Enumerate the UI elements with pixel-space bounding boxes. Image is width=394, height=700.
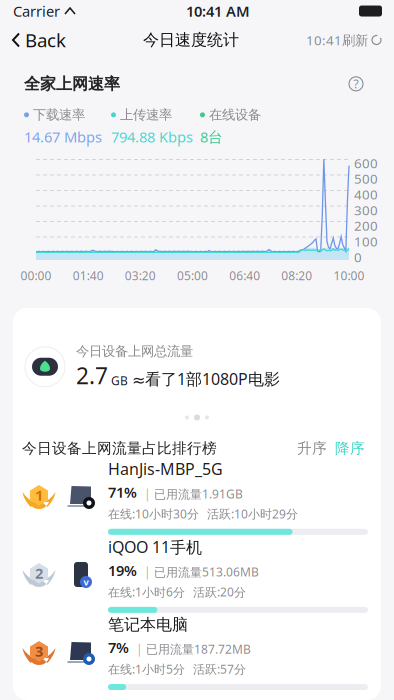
staticText: 06:40 [229, 267, 260, 283]
staticText: GB [111, 372, 128, 388]
staticText: 8台 [200, 127, 223, 146]
button[interactable]: 1 [13, 457, 381, 535]
staticText: 今日设备上网流量占比排行榜 [22, 439, 217, 457]
staticText: 升序 [297, 439, 327, 457]
staticText: 上传速率 [120, 107, 172, 123]
staticText: 14.67 Mbps [24, 127, 102, 146]
staticText: HanJis-MBP_5G [108, 458, 223, 479]
staticText: ? [353, 76, 358, 92]
button[interactable]: 降序 [327, 439, 365, 457]
staticText: 今日设备上网总流量 [76, 343, 193, 359]
staticText: 2 [35, 563, 43, 583]
staticText: 10:41刷新 [306, 31, 368, 49]
staticText: 今日速度统计 [143, 30, 239, 50]
staticText: | [144, 564, 151, 580]
staticText: 在线:1小时5分 活跃:57分 [108, 661, 246, 677]
staticText: 7% [108, 638, 129, 657]
staticText: 300 [354, 201, 378, 219]
staticText: 19% [108, 560, 137, 580]
button[interactable]: Back [0, 22, 76, 58]
staticText: 00:00 [20, 267, 51, 283]
staticText: 在线设备 [209, 107, 261, 123]
staticText: 794.88 Kbps [111, 127, 193, 146]
staticText: 已用流量187.72MB [146, 641, 251, 657]
staticText: 笔记本电脑 [108, 615, 188, 635]
staticText: 已用流量1.91GB [154, 486, 243, 502]
staticText: 3 [35, 641, 43, 661]
staticText: 01:40 [73, 267, 104, 283]
button[interactable]: 帮助 [349, 77, 363, 91]
button[interactable]: 10:41刷新 [306, 22, 394, 58]
staticText: | [136, 641, 143, 657]
staticText: 0 [354, 248, 362, 266]
staticText: 已用流量513.06MB [154, 564, 259, 580]
staticText: 1 [35, 485, 43, 505]
staticText: 03:20 [125, 267, 156, 283]
staticText: | [144, 486, 151, 502]
staticText: 600 [354, 154, 378, 172]
staticText: v [83, 576, 88, 588]
staticText: 71% [108, 482, 137, 502]
staticText: 全家上网速率 [24, 74, 120, 94]
button[interactable]: 升序 [297, 439, 327, 457]
staticText: 2.7 [76, 360, 108, 390]
staticText: 100 [354, 232, 378, 250]
staticText: iQOO 11手机 [108, 536, 202, 557]
staticText: 在线:10小时30分 活跃:10小时29分 [108, 506, 298, 522]
staticText: ≈看了1部1080P电影 [132, 368, 280, 389]
button[interactable]: 3 [13, 613, 381, 691]
staticText: 500 [354, 170, 378, 187]
staticText: 08:20 [281, 267, 312, 283]
staticText: 400 [354, 185, 378, 203]
staticText: 10:41 AM [186, 1, 250, 21]
staticText: 05:00 [177, 267, 208, 283]
staticText: 10:00 [333, 267, 364, 283]
staticText: 200 [354, 217, 378, 234]
staticText: 在线:1小时6分 活跃:20分 [108, 584, 246, 600]
staticText: Back [25, 28, 66, 52]
staticText: 降序 [335, 439, 365, 457]
button[interactable]: 2 [13, 535, 381, 613]
staticText: 下载速率 [33, 107, 85, 123]
staticText: Carrier [13, 1, 60, 21]
